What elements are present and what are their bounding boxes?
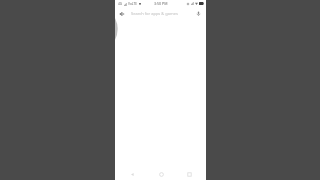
button[interactable]: Recent apps [184, 169, 194, 179]
staticText: 3:50 PM [154, 1, 168, 6]
staticText: Search for apps & games [131, 11, 178, 16]
staticText: 4G [118, 2, 123, 6]
button[interactable]: Back [116, 8, 127, 19]
staticText: VoLTE [128, 2, 138, 6]
button[interactable]: Back [127, 169, 137, 179]
button[interactable]: Home [156, 169, 166, 179]
button[interactable]: Voice search [193, 8, 204, 19]
